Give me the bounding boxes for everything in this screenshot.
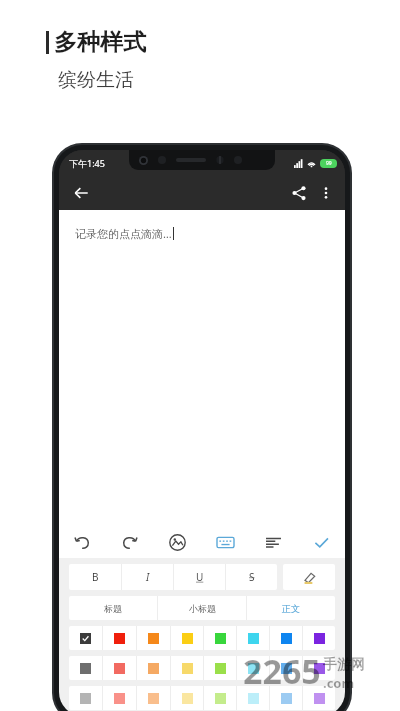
staticText: 正文 [282,603,300,614]
button[interactable]: Colour 4 [171,626,203,650]
button[interactable]: Colour 4 [171,656,203,680]
button[interactable]: 标题 [69,596,157,620]
button[interactable]: Colour 1 [69,686,102,710]
button[interactable]: Colour 5 [204,626,236,650]
button[interactable]: Insert image [153,526,201,558]
staticText: U [196,570,204,584]
button[interactable]: Align [249,526,297,558]
button[interactable]: S [226,564,277,590]
button[interactable]: Colour 8 [303,686,335,710]
button[interactable]: Colour 1 [69,656,102,680]
button[interactable]: 小标题 [158,596,246,620]
button[interactable]: Back [67,179,95,207]
button[interactable]: Redo [106,526,153,558]
button[interactable]: Colour 4 [171,686,203,710]
button[interactable]: Colour 2 [103,626,136,650]
button[interactable]: Colour 6 [237,656,269,680]
staticText: 标题 [104,603,122,614]
staticText: B [92,570,99,584]
button[interactable]: Colour 1 [69,626,102,650]
button[interactable]: Colour 5 [204,686,236,710]
staticText: 99 [326,160,332,167]
button[interactable]: Colour 2 [103,656,136,680]
staticText: 小标题 [189,603,216,614]
button[interactable]: Colour 7 [270,626,302,650]
staticText: 记录您的点点滴滴… [75,226,172,241]
button[interactable]: Colour 7 [270,686,302,710]
button[interactable]: Colour 3 [137,656,170,680]
staticText: 手游网 [323,656,365,674]
button[interactable]: Undo [59,526,106,558]
button[interactable]: Colour 3 [137,626,170,650]
button[interactable]: Colour 3 [137,686,170,710]
button[interactable]: I [122,564,173,590]
staticText: I [146,570,150,584]
button[interactable]: Colour 8 [303,656,335,680]
button[interactable]: U [174,564,225,590]
button[interactable]: Keyboard [201,526,249,558]
button[interactable]: B [69,564,121,590]
button[interactable]: Colour 6 [237,686,269,710]
button[interactable]: Highlighter [283,564,335,590]
button[interactable]: Colour 6 [237,626,269,650]
staticText: S [249,570,255,584]
button[interactable]: Colour 7 [270,656,302,680]
button[interactable]: Colour 5 [204,656,236,680]
button[interactable]: Colour 2 [103,686,136,710]
button[interactable]: Colour 8 [303,626,335,650]
staticText: 下午1:45 [69,157,105,169]
button[interactable]: More options [313,180,339,206]
staticText: 多种样式 [54,28,146,57]
button[interactable]: Share [285,179,313,207]
button[interactable]: Done [297,526,345,558]
staticText: .com [323,674,355,692]
button[interactable]: 正文 [247,596,335,620]
staticText: 缤纷生活 [58,68,134,92]
staticText: 2265 [243,648,321,694]
